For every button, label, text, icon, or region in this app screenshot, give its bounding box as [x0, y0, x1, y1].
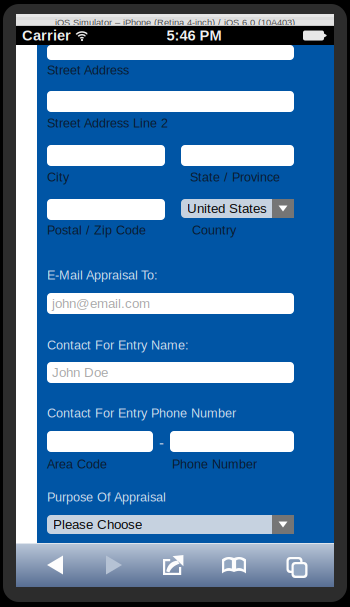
button[interactable]: Back [35, 543, 75, 586]
staticText: E-Mail Appraisal To: [47, 268, 158, 282]
staticText: iOS Simulator – iPhone (Retina 4-inch) /… [55, 17, 295, 28]
button[interactable]: Please Choose [47, 515, 294, 534]
button[interactable]: Forward [94, 543, 134, 586]
button[interactable]: Share [153, 544, 194, 586]
button[interactable]: Bookmarks [213, 544, 255, 586]
button[interactable]: Tabs [274, 543, 315, 586]
staticText: 5:46 PM [166, 27, 221, 44]
staticText: Purpose Of Appraisal [47, 490, 166, 504]
staticText: Contact For Entry Name: [47, 338, 189, 352]
staticText: Phone Number [172, 457, 257, 471]
staticText: Area Code [47, 457, 107, 471]
staticText: City [47, 170, 69, 184]
staticText: Postal / Zip Code [47, 223, 146, 237]
staticText: john@email.com [52, 296, 150, 311]
staticText: - [159, 435, 164, 451]
staticText: United States [187, 201, 267, 216]
staticText: John Doe [52, 365, 108, 380]
staticText: Street Address Line 2 [47, 116, 168, 130]
staticText: State / Province [190, 170, 280, 184]
staticText: Country [192, 223, 236, 237]
button[interactable]: United States [181, 199, 294, 218]
staticText: Street Address [47, 63, 129, 77]
staticText: Carrier [22, 27, 71, 44]
staticText: Contact For Entry Phone Number [47, 406, 236, 420]
staticText: Please Choose [53, 517, 142, 532]
